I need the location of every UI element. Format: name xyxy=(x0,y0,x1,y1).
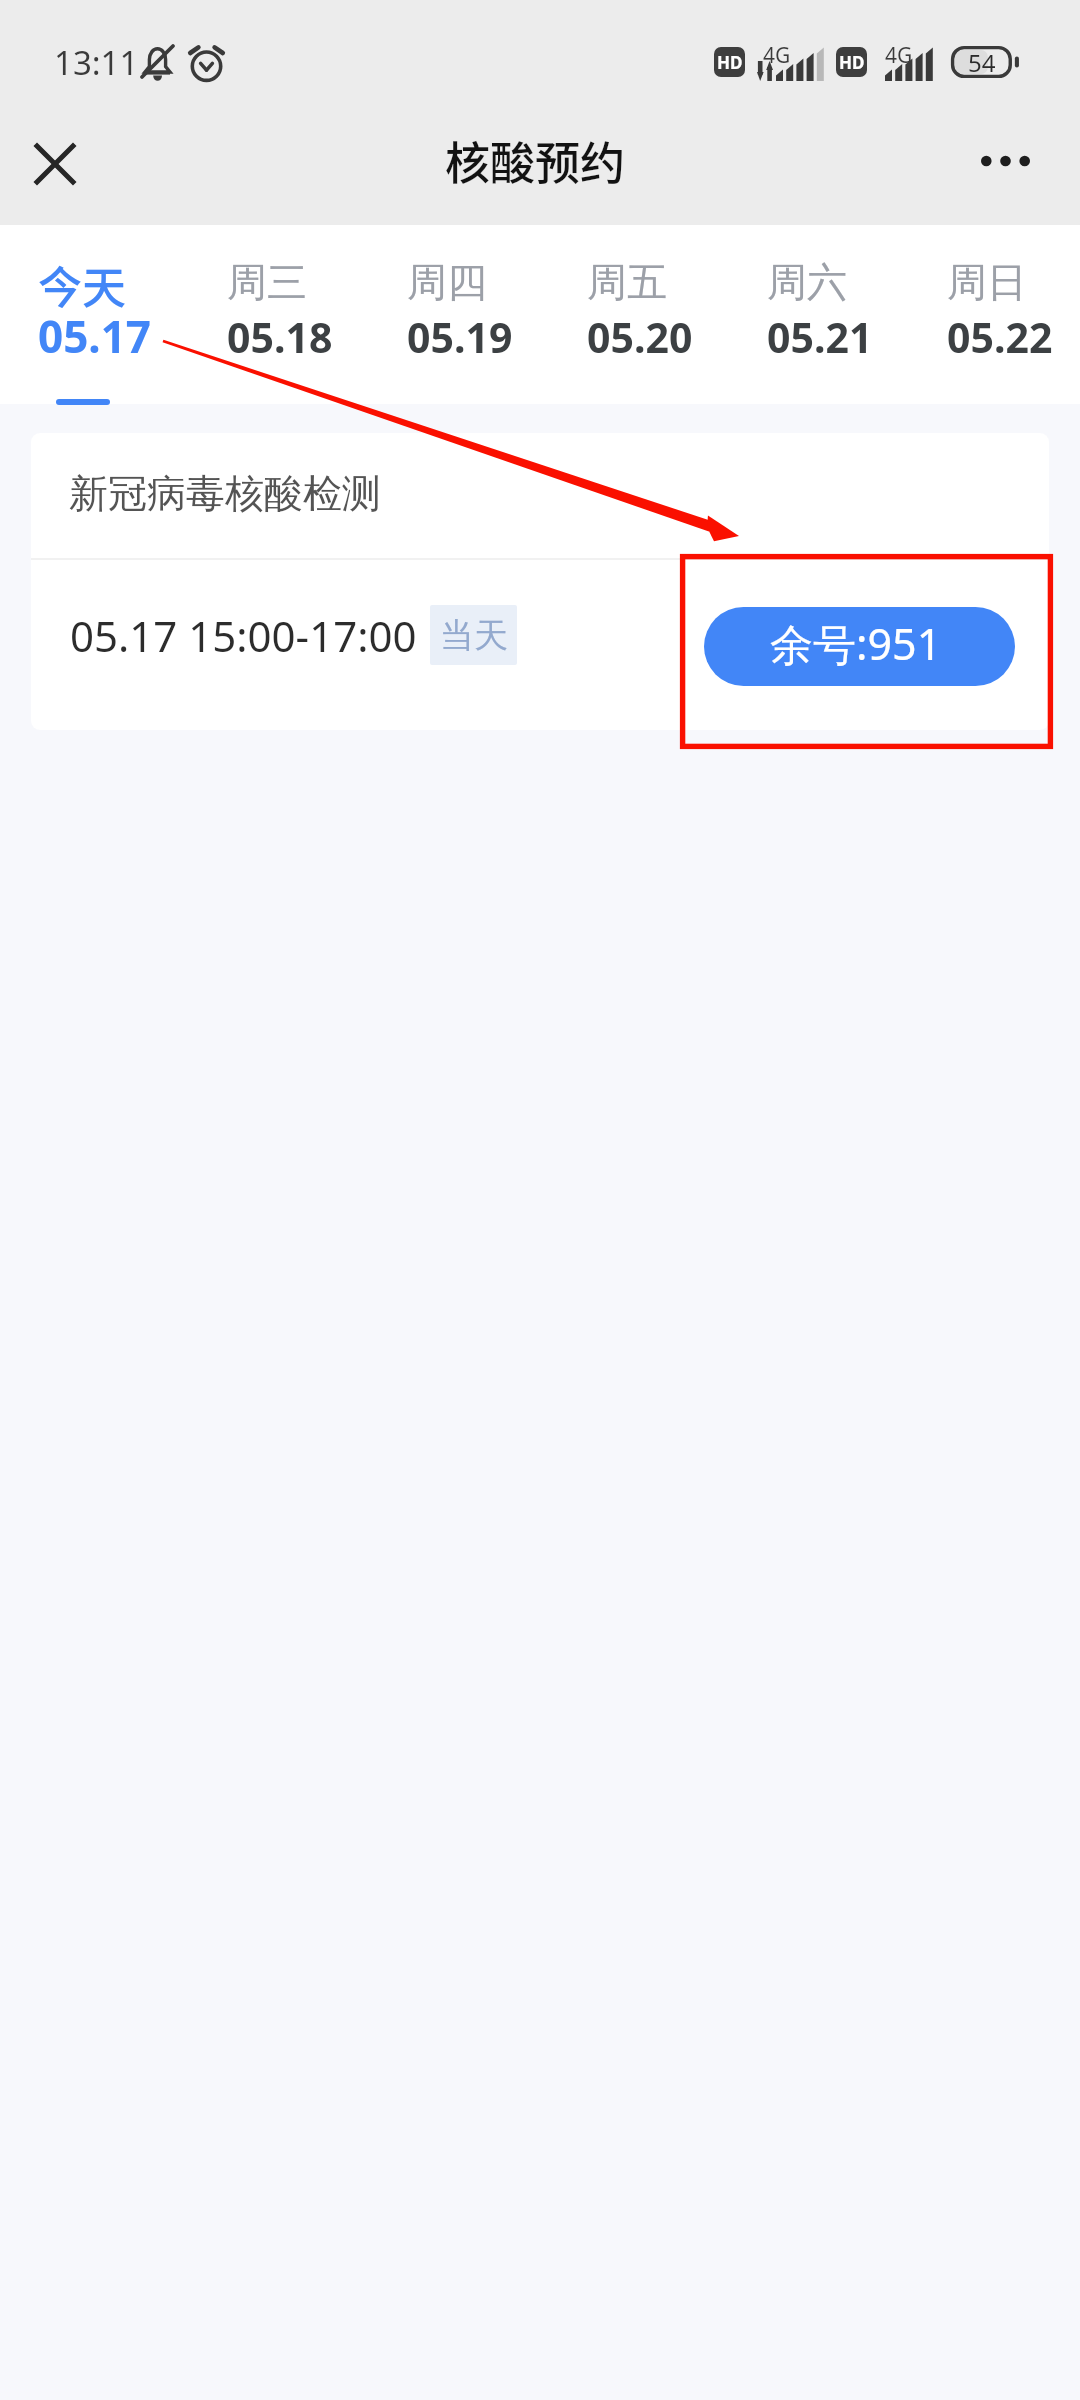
staticText: 周四 xyxy=(407,257,487,307)
staticText: 周日 xyxy=(947,257,1027,307)
staticText: HD xyxy=(717,51,743,74)
button[interactable]: 周四 xyxy=(406,225,586,404)
button[interactable]: 周三 xyxy=(226,225,406,404)
staticText: 余号:951 xyxy=(770,614,942,673)
button[interactable]: 周五 xyxy=(586,225,766,404)
staticText: 周六 xyxy=(767,257,847,307)
staticText: 核酸预约 xyxy=(445,128,626,193)
staticText: 当天 xyxy=(440,614,508,657)
staticText: 4G xyxy=(885,41,913,70)
staticText: 05.17 xyxy=(38,306,152,366)
staticText: 05.19 xyxy=(407,309,513,365)
button[interactable]: 周六 xyxy=(766,225,946,404)
staticText: 05.20 xyxy=(587,309,693,365)
staticText: 54 xyxy=(968,46,996,78)
button[interactable]: 周日 xyxy=(946,225,1080,404)
staticText: 05.21 xyxy=(767,309,873,365)
staticText: HD xyxy=(839,51,865,74)
staticText: 周三 xyxy=(227,257,307,307)
button[interactable]: 今天 xyxy=(37,225,226,404)
staticText: 13:11 xyxy=(54,40,139,85)
button[interactable]: More options xyxy=(971,127,1039,195)
staticText: 今天 xyxy=(38,253,126,317)
button[interactable]: Close xyxy=(21,130,89,198)
staticText: 周五 xyxy=(587,257,667,307)
staticText: 新冠病毒核酸检测 xyxy=(69,469,381,518)
staticText: 4G xyxy=(763,41,791,70)
staticText: 05.22 xyxy=(947,309,1053,365)
button[interactable]: 余号:951 xyxy=(704,607,1015,686)
staticText: 05.17 15:00-17:00 xyxy=(70,607,417,664)
staticText: 05.18 xyxy=(227,309,333,365)
